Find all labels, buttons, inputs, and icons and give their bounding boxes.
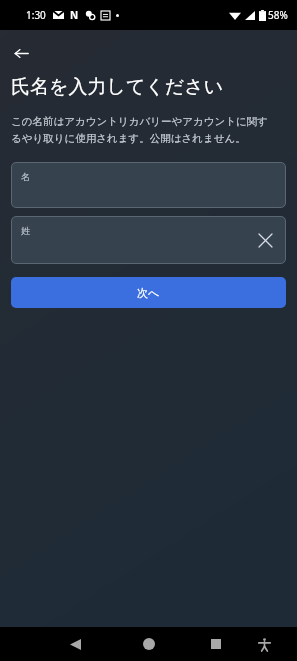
staticText: N — [70, 8, 79, 22]
button[interactable]: Clear text — [254, 229, 276, 251]
button[interactable]: Home — [134, 629, 164, 659]
staticText: 氏名を入力してください — [11, 75, 224, 99]
button[interactable]: Recent apps — [201, 629, 231, 659]
button[interactable]: Back — [60, 629, 90, 659]
staticText: 姓 — [21, 225, 30, 236]
button[interactable]: 次へ — [11, 277, 286, 308]
staticText: この名前はアカウントリカバリーやアカウントに関す るやり取りに使用されます。公開… — [11, 115, 268, 145]
staticText: 58% — [268, 8, 288, 22]
staticText: 次へ — [137, 286, 160, 300]
button[interactable]: 姓 — [11, 216, 286, 264]
staticText: 1:30 — [26, 8, 46, 22]
button[interactable]: Accessibility — [250, 630, 278, 658]
button[interactable]: 名 — [11, 162, 286, 208]
staticText: 名 — [21, 171, 30, 182]
button[interactable]: Back — [7, 39, 35, 67]
